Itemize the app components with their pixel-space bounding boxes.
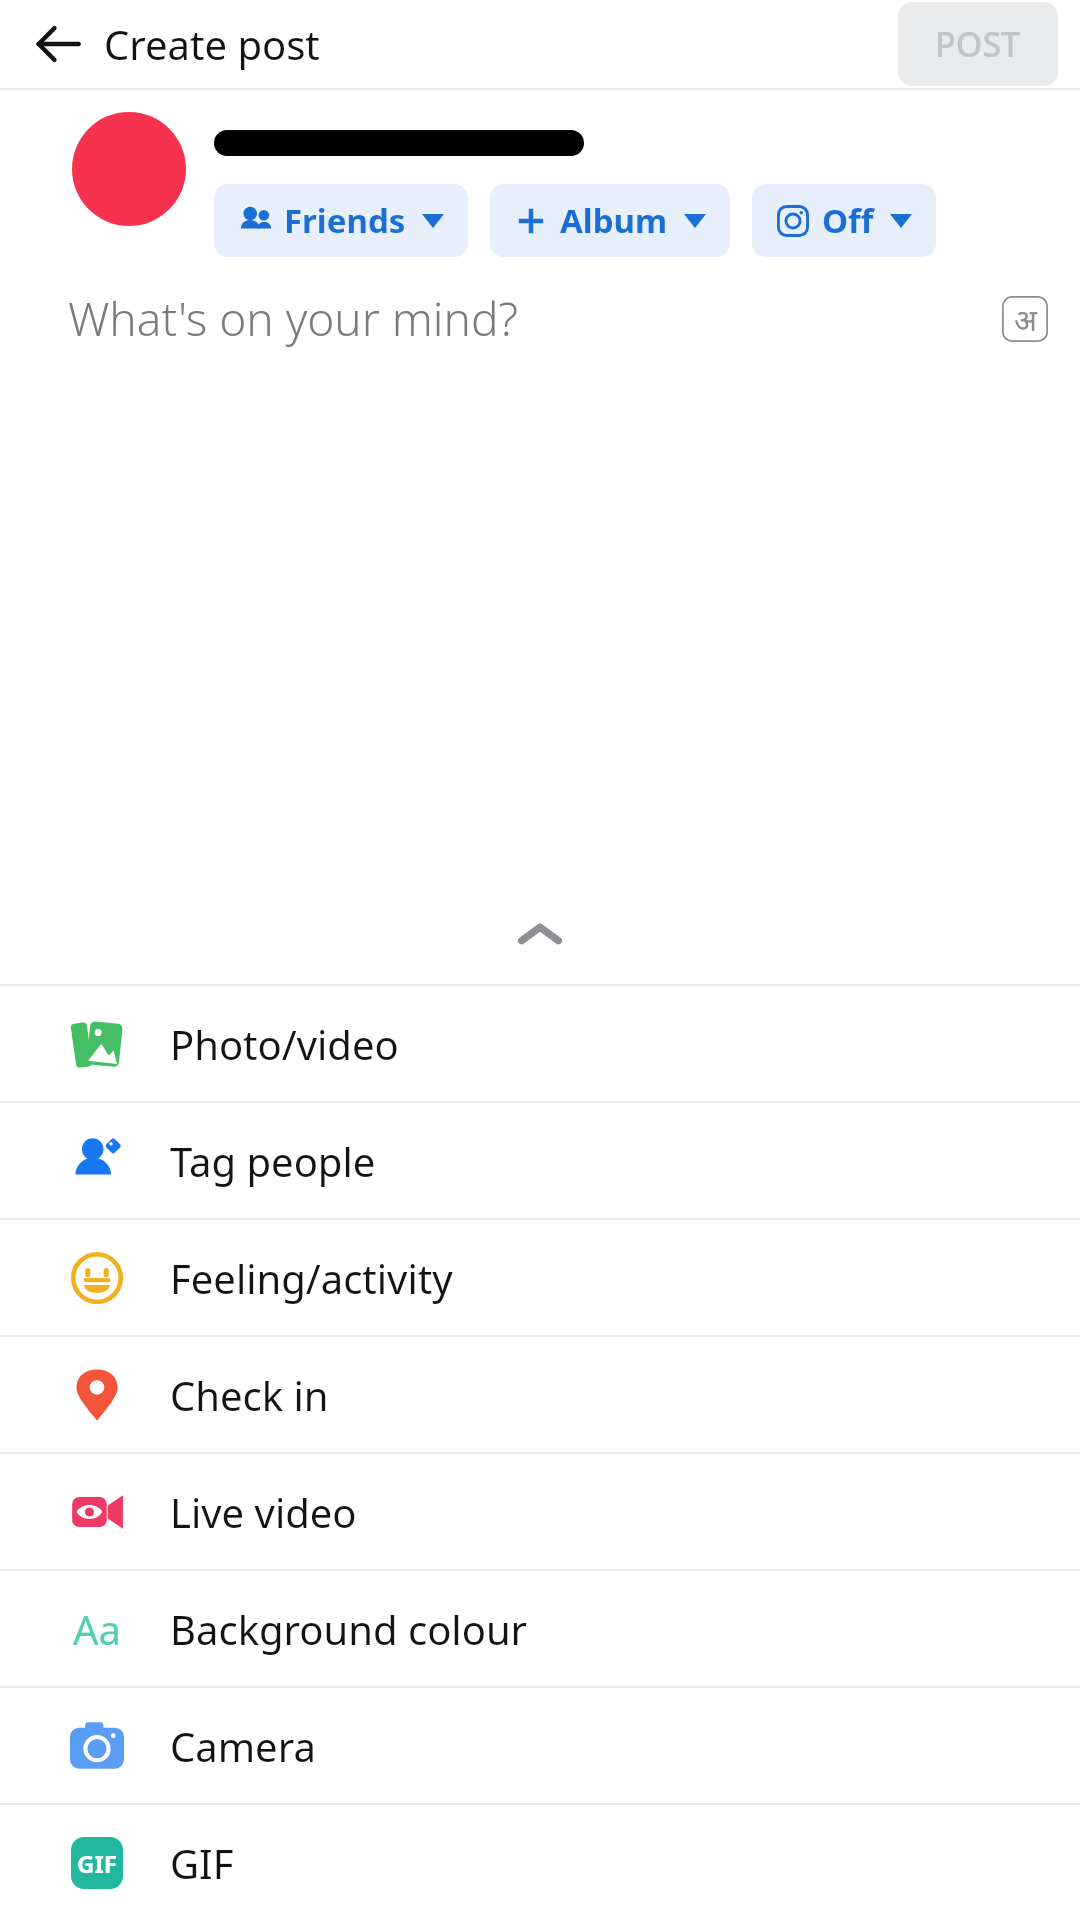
staticText: Album <box>560 198 668 243</box>
button[interactable]: Photo/video <box>0 986 1080 1101</box>
staticText: Tag people <box>170 1134 376 1188</box>
staticText: Feeling/activity <box>170 1251 453 1305</box>
staticText: Photo/video <box>170 1017 399 1071</box>
staticText: POST <box>935 21 1021 67</box>
button[interactable]: GIF <box>0 1805 1080 1920</box>
button[interactable]: Off <box>752 184 936 257</box>
button[interactable]: POST <box>898 2 1058 86</box>
staticText: Camera <box>170 1719 316 1773</box>
button[interactable]: Collapse <box>0 884 1080 984</box>
staticText: Aa <box>73 1602 121 1656</box>
staticText: Off <box>822 198 874 243</box>
button[interactable]: Live video <box>0 1454 1080 1569</box>
button[interactable]: Camera <box>0 1688 1080 1803</box>
button[interactable]: Tag people <box>0 1103 1080 1218</box>
staticText: Friends <box>284 198 406 243</box>
staticText: Live video <box>170 1485 357 1539</box>
staticText: What's on your mind? <box>68 287 518 350</box>
button[interactable]: Aa <box>0 1571 1080 1686</box>
button[interactable]: Check in <box>0 1337 1080 1452</box>
staticText: अ <box>1014 299 1037 340</box>
button[interactable]: Feeling/activity <box>0 1220 1080 1335</box>
button[interactable]: Back <box>18 4 98 84</box>
staticText: GIF <box>170 1836 234 1890</box>
staticText: Background colour <box>170 1602 528 1656</box>
staticText: Create post <box>104 17 320 71</box>
staticText: GIF <box>77 1847 117 1880</box>
button[interactable] <box>72 112 186 226</box>
button[interactable]: Album <box>490 184 730 257</box>
staticText: Check in <box>170 1368 329 1422</box>
button[interactable]: Friends <box>214 184 468 257</box>
button[interactable]: Change keyboard language <box>996 290 1054 348</box>
